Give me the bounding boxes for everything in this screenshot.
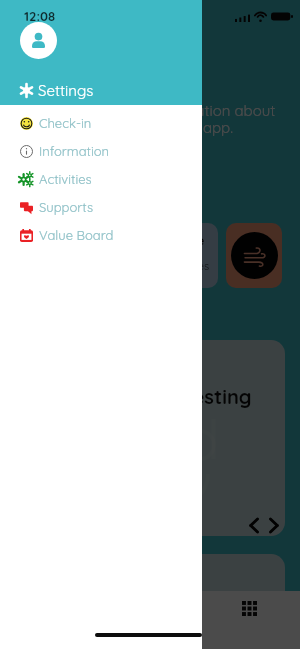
button[interactable]: Activities <box>0 165 202 193</box>
button[interactable] <box>226 223 282 288</box>
staticText: your app. <box>167 118 233 137</box>
staticText: 12:08 <box>24 8 56 24</box>
button[interactable]: Check-in <box>0 109 202 137</box>
button[interactable]: Value Board <box>0 221 202 249</box>
staticText: Value Board <box>39 227 114 243</box>
staticText: Live <box>181 233 205 248</box>
button[interactable]: Previous <box>245 516 264 535</box>
staticText: Supports <box>39 199 94 215</box>
button[interactable] <box>18 554 285 644</box>
button[interactable]: Interesting <box>18 340 285 536</box>
staticText: Activities <box>39 171 92 187</box>
staticText: notes <box>181 259 210 273</box>
button[interactable]: Next <box>264 516 283 535</box>
button[interactable]: Supports <box>0 193 202 221</box>
staticText: Get information about <box>122 101 276 120</box>
button[interactable]: Apps <box>232 591 266 625</box>
staticText: Interesting <box>147 384 252 409</box>
staticText: Settings <box>38 81 94 100</box>
staticText: Check-in <box>39 115 92 131</box>
staticText: Information <box>39 143 110 159</box>
button[interactable]: Information <box>0 137 202 165</box>
button[interactable]: Settings <box>0 75 202 105</box>
button[interactable]: Live <box>162 223 218 288</box>
